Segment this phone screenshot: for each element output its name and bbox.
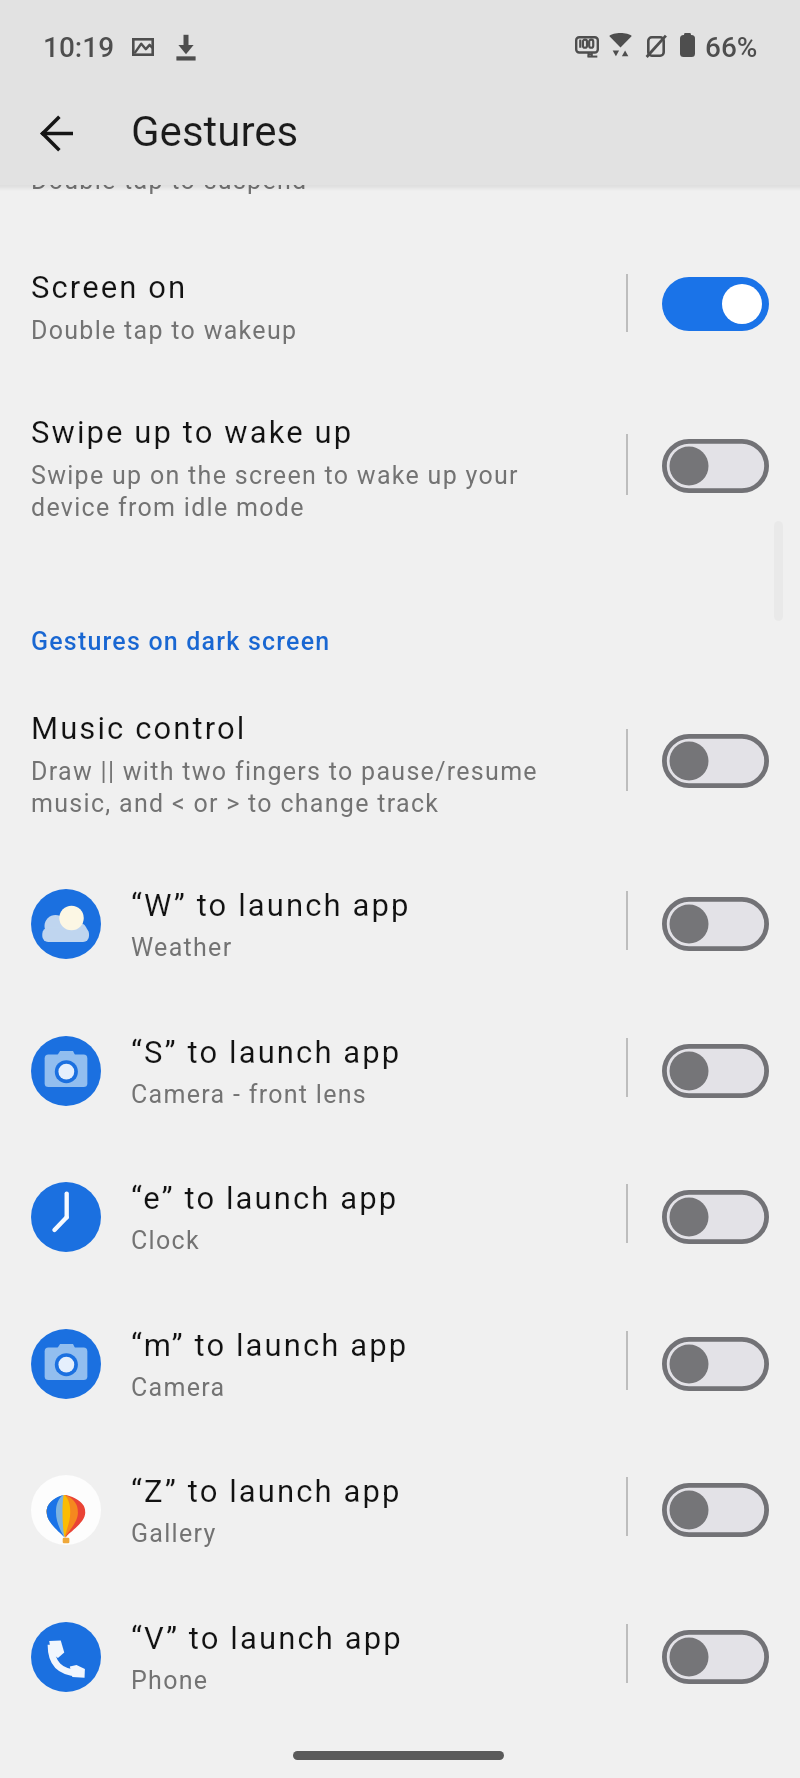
button[interactable]: Phone shortcut, off xyxy=(662,1630,769,1684)
button[interactable]: Gallery shortcut, off xyxy=(662,1483,769,1537)
staticText: “V” to launch app xyxy=(131,1620,403,1656)
button[interactable]: Swipe up to wake up, off xyxy=(662,439,769,493)
staticText: “Z” to launch app xyxy=(131,1473,402,1509)
staticText: 66% xyxy=(705,31,758,64)
button[interactable]: Camera - front lens shortcut, off xyxy=(662,1044,769,1098)
staticText: Clock xyxy=(131,1226,200,1255)
button[interactable] xyxy=(0,1592,800,1724)
button[interactable]: Music control, off xyxy=(662,734,769,788)
staticText: Screen on xyxy=(31,269,188,305)
staticText: Swipe up to wake up xyxy=(31,414,354,450)
staticText: Phone xyxy=(131,1666,209,1695)
staticText: Draw || with two fingers to pause/resume… xyxy=(31,757,576,818)
staticText: “W” to launch app xyxy=(131,887,411,923)
staticText: Music control xyxy=(31,710,247,746)
button[interactable]: Weather shortcut, off xyxy=(662,897,769,951)
button[interactable] xyxy=(0,1152,800,1284)
staticText: Double tap to suspend xyxy=(31,166,308,195)
staticText: Weather xyxy=(131,933,233,962)
staticText: Gestures on dark screen xyxy=(31,627,331,656)
button[interactable] xyxy=(0,250,800,370)
button[interactable] xyxy=(0,859,800,991)
staticText: Camera xyxy=(131,1373,226,1402)
button[interactable] xyxy=(0,396,800,546)
button[interactable]: Clock shortcut, off xyxy=(662,1190,769,1244)
button[interactable]: Screen on, on xyxy=(662,277,769,331)
button[interactable] xyxy=(0,1006,800,1138)
staticText: Camera - front lens xyxy=(131,1080,368,1109)
staticText: “m” to launch app xyxy=(131,1327,409,1363)
staticText: “e” to launch app xyxy=(131,1180,399,1216)
button[interactable] xyxy=(0,692,800,842)
button[interactable]: Back xyxy=(25,101,89,165)
staticText: Swipe up on the screen to wake up your d… xyxy=(31,461,551,522)
staticText: Gallery xyxy=(131,1519,217,1548)
staticText: Double tap to wakeup xyxy=(31,316,298,345)
staticText: Gestures xyxy=(131,107,299,156)
button[interactable]: Camera shortcut, off xyxy=(662,1337,769,1391)
staticText: “S” to launch app xyxy=(131,1034,402,1070)
button[interactable] xyxy=(0,1299,800,1431)
staticText: 10:19 xyxy=(43,31,115,64)
button[interactable] xyxy=(0,1445,800,1577)
